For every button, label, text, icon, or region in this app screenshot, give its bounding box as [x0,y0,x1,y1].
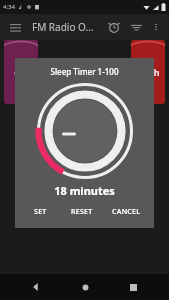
staticText: CANCEL [112,207,141,217]
staticText: OD [14,66,28,78]
staticText: SET [34,207,47,217]
staticText: FM Radio O… [32,20,103,34]
staticText: 4:34 [3,3,15,11]
button[interactable]: Sleep timer [103,16,125,38]
button[interactable]: CANCEL [104,204,148,220]
staticText: 18 minutes [15,183,154,198]
button[interactable]: OD [4,40,38,104]
staticText: Sleep Timer 1-100 [15,66,154,77]
button[interactable]: Sort [125,16,147,38]
staticText: RESET [71,207,93,217]
button[interactable]: Open navigation drawer [4,16,26,38]
button[interactable]: Recent apps [120,274,146,300]
button[interactable]: Home [72,274,98,300]
staticText: 91 th [137,66,160,78]
button[interactable]: More options [147,18,165,36]
button[interactable]: Back [23,274,49,300]
button[interactable]: 91 th [131,40,165,104]
button[interactable]: SET [21,204,60,220]
button[interactable]: RESET [60,204,104,220]
